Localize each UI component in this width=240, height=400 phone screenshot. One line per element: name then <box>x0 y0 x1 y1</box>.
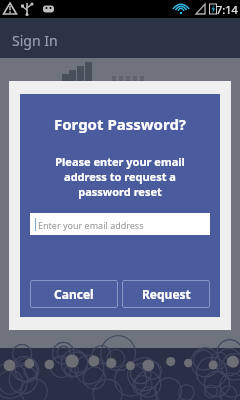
staticText: Enter your email address <box>38 219 144 231</box>
staticText: Sign In <box>12 31 58 50</box>
staticText: Cancel <box>54 286 94 302</box>
staticText: Please enter your email address to reque… <box>30 154 210 199</box>
button[interactable]: Request <box>122 280 210 308</box>
button[interactable]: Cancel <box>30 280 118 308</box>
staticText: Request <box>142 286 191 302</box>
button[interactable]: Enter your email address <box>30 213 210 235</box>
staticText: 7:14 <box>216 2 238 17</box>
staticText: Forgot Password? <box>30 114 210 134</box>
